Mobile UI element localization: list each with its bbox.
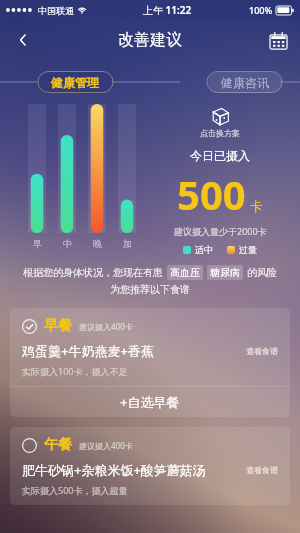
button[interactable]: 健康咨讯 bbox=[208, 72, 282, 93]
staticText: 根据您的身体状况，您现在有患 bbox=[23, 266, 163, 279]
staticText: 高血压 bbox=[170, 266, 200, 279]
button[interactable]: 查看食谱 bbox=[242, 465, 278, 475]
staticText: 健康咨讯 bbox=[221, 75, 269, 90]
button[interactable]: Back bbox=[0, 20, 46, 60]
staticText: 上午 11:22 bbox=[143, 3, 192, 17]
staticText: 早 bbox=[33, 238, 42, 249]
staticText: 中国联通 bbox=[38, 5, 74, 16]
button[interactable]: 早餐 bbox=[10, 308, 290, 417]
button[interactable]: 午餐 bbox=[10, 427, 290, 505]
staticText: 建议摄入400卡 bbox=[79, 321, 133, 332]
staticText: 查看食谱 bbox=[246, 465, 278, 475]
button[interactable]: Calendar bbox=[256, 20, 300, 60]
staticText: 加 bbox=[123, 238, 132, 249]
staticText: 糖尿病 bbox=[210, 266, 240, 279]
staticText: 为您推荐以下食谱 bbox=[110, 283, 190, 296]
staticText: 过量 bbox=[239, 244, 257, 255]
staticText: 实际摄入100卡，摄入不足 bbox=[22, 365, 128, 377]
staticText: 鸡蛋羹+牛奶燕麦+香蕉 bbox=[22, 342, 154, 360]
staticText: +自选早餐 bbox=[120, 393, 180, 411]
staticText: 实际摄入500卡，摄入超量 bbox=[22, 484, 128, 496]
staticText: 健康管理 bbox=[51, 75, 99, 90]
staticText: 改善建议 bbox=[118, 30, 182, 50]
staticText: 查看食谱 bbox=[246, 346, 278, 356]
staticText: 点击换方案 bbox=[200, 128, 240, 138]
staticText: 适中 bbox=[195, 244, 213, 255]
staticText: 今日已摄入 bbox=[190, 148, 250, 163]
staticText: 卡 bbox=[250, 198, 263, 214]
staticText: 100% bbox=[249, 4, 273, 16]
staticText: 建议摄入400卡 bbox=[79, 440, 133, 451]
staticText: 早餐 bbox=[44, 317, 72, 335]
button[interactable]: 查看食谱 bbox=[242, 346, 278, 356]
staticText: 肥牛砂锅+杂粮米饭+酸笋蘑菇汤 bbox=[22, 461, 206, 479]
staticText: 500 bbox=[177, 167, 246, 221]
staticText: 午餐 bbox=[44, 436, 72, 454]
staticText: 晚 bbox=[93, 238, 102, 249]
button[interactable]: +自选早餐 bbox=[10, 387, 290, 417]
button[interactable]: 换方案 bbox=[198, 104, 242, 140]
button[interactable]: 健康管理 bbox=[38, 72, 112, 93]
staticText: 的风险 bbox=[247, 266, 277, 279]
staticText: 建议摄入量少于2000卡 bbox=[174, 225, 267, 237]
staticText: 中 bbox=[63, 238, 72, 249]
